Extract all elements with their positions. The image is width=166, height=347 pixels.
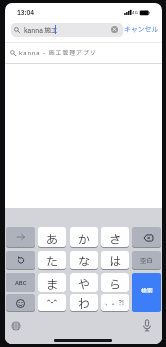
staticText: な bbox=[78, 253, 91, 269]
staticText: kanna - 施工管理アプリ bbox=[19, 49, 97, 58]
staticText: 4G bbox=[132, 10, 138, 16]
button[interactable]: は bbox=[101, 251, 129, 269]
button[interactable]: た bbox=[38, 251, 66, 269]
button[interactable]: 、。?! bbox=[101, 294, 129, 311]
button[interactable] bbox=[11, 321, 21, 331]
button[interactable] bbox=[6, 294, 35, 311]
button[interactable]: 検索 bbox=[132, 273, 161, 312]
button[interactable]: な bbox=[70, 251, 98, 269]
button[interactable]: キャンセル bbox=[124, 23, 159, 37]
staticText: や bbox=[78, 276, 91, 292]
staticText: か bbox=[78, 231, 91, 247]
staticText: ら bbox=[109, 276, 122, 292]
button[interactable]: か bbox=[70, 227, 98, 247]
staticText: ま bbox=[46, 276, 59, 292]
button[interactable] bbox=[38, 294, 66, 311]
staticText: kanna 施工 bbox=[24, 26, 58, 36]
button[interactable] bbox=[132, 227, 161, 247]
button[interactable] bbox=[6, 251, 35, 269]
staticText: さ bbox=[109, 231, 122, 247]
button[interactable] bbox=[5, 42, 162, 63]
button[interactable]: ま bbox=[38, 273, 66, 292]
staticText: 13:04 bbox=[17, 9, 32, 18]
button[interactable] bbox=[11, 23, 123, 37]
staticText: 空白 bbox=[140, 256, 153, 265]
button[interactable] bbox=[142, 319, 152, 333]
button[interactable]: さ bbox=[101, 227, 129, 247]
staticText: 検索 bbox=[141, 287, 153, 296]
staticText: わ bbox=[78, 295, 91, 311]
staticText: キャンセル bbox=[124, 25, 159, 35]
staticText: あ bbox=[46, 231, 59, 247]
button[interactable]: あ bbox=[38, 227, 66, 247]
button[interactable]: ABC bbox=[6, 273, 35, 292]
button[interactable]: わ bbox=[70, 294, 98, 311]
staticText: た bbox=[46, 253, 59, 269]
button[interactable]: や bbox=[70, 273, 98, 292]
staticText: 、。?! bbox=[105, 298, 125, 308]
button[interactable]: ら bbox=[101, 273, 129, 292]
staticText: ABC bbox=[15, 279, 27, 287]
button[interactable] bbox=[6, 227, 35, 247]
staticText: は bbox=[109, 253, 122, 269]
button[interactable] bbox=[111, 26, 118, 33]
button[interactable]: 空白 bbox=[132, 251, 161, 269]
